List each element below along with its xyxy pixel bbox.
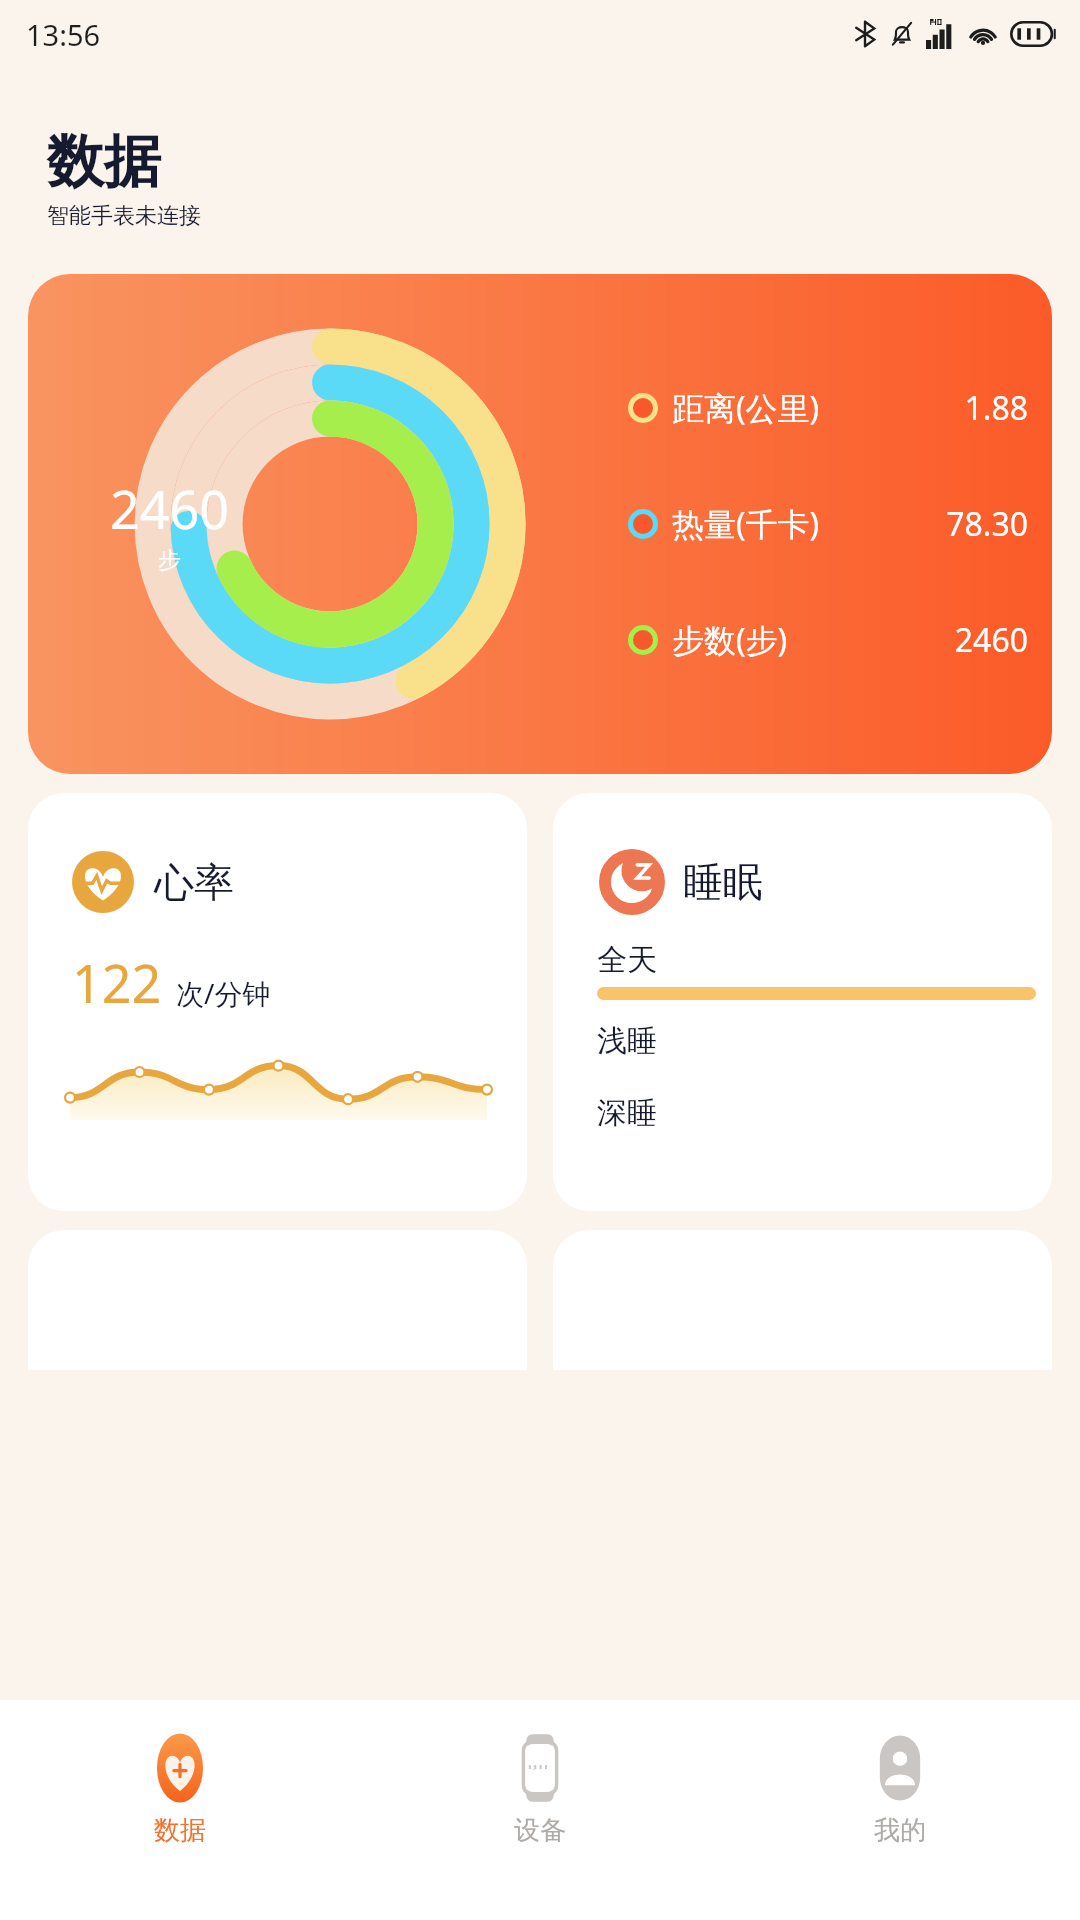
staticText: 深睡	[597, 1094, 657, 1132]
staticText: 次/分钟	[176, 974, 271, 1012]
staticText: 122	[72, 947, 162, 1018]
staticText: 13:56	[26, 15, 101, 54]
button[interactable]: 睡眠	[553, 793, 1052, 1211]
other: 心率	[72, 851, 134, 913]
button[interactable]: 数据	[0, 1700, 360, 1920]
staticText: 步数(步)	[672, 618, 788, 662]
staticText: 心率	[154, 857, 234, 907]
staticText: 数据	[154, 1814, 206, 1847]
staticText: 1.88	[906, 386, 1028, 430]
staticText: 我的	[874, 1814, 926, 1847]
staticText: 睡眠	[683, 857, 763, 907]
staticText: 步	[158, 546, 181, 575]
staticText: 2460	[906, 618, 1028, 662]
button[interactable]: 我的	[720, 1700, 1080, 1920]
staticText: 78.30	[906, 502, 1028, 546]
button[interactable]: 设备	[360, 1700, 720, 1920]
staticText: 数据	[47, 126, 161, 198]
staticText: 设备	[514, 1814, 566, 1847]
staticText: 全天	[597, 941, 657, 979]
staticText: 热量(千卡)	[672, 502, 820, 546]
staticText: 浅睡	[597, 1022, 657, 1060]
button[interactable]: 2460	[28, 274, 1052, 774]
staticText: 智能手表未连接	[47, 202, 201, 230]
staticText: 2460	[110, 473, 229, 544]
button[interactable]: 心率	[28, 793, 527, 1211]
staticText: 距离(公里)	[672, 386, 820, 430]
other: 睡眠	[599, 849, 665, 915]
